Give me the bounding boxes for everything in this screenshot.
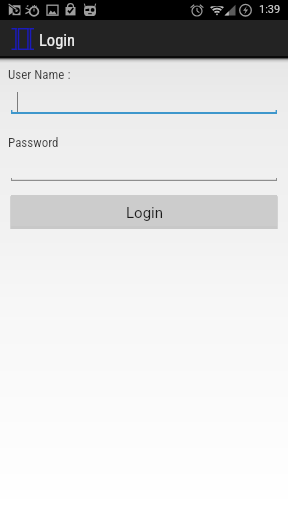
button[interactable] xyxy=(11,88,277,114)
button[interactable] xyxy=(11,155,277,181)
staticText: 1:39 xyxy=(259,3,281,16)
staticText: Login xyxy=(39,31,76,50)
staticText: User Name : xyxy=(8,67,71,82)
staticText: Login xyxy=(126,204,163,222)
button[interactable]: App logo xyxy=(11,28,34,50)
staticText: Password xyxy=(8,135,59,150)
button[interactable]: Login xyxy=(11,195,277,226)
